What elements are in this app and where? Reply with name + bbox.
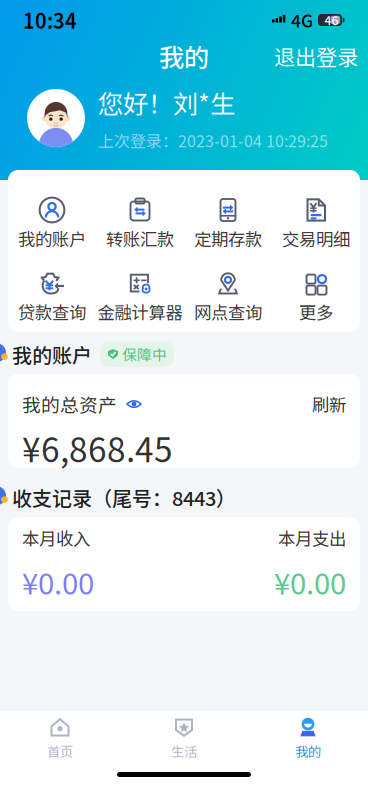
staticText: 我的 [159, 38, 209, 74]
staticText: 保障中 [122, 344, 167, 365]
staticText: 4G [291, 7, 313, 33]
staticText: ¥0.00 [274, 560, 346, 603]
staticText: 退出登录 [274, 41, 358, 71]
staticText: 金融计算器 [97, 299, 182, 324]
button[interactable]: 刷新 [312, 391, 346, 417]
staticText: 更多 [299, 299, 333, 324]
staticText: 46 [324, 11, 338, 29]
button[interactable]: 更多 [272, 269, 360, 324]
staticText: 生活 [171, 741, 197, 761]
button[interactable]: 生活 [122, 716, 246, 761]
staticText: ¥6,868.45 [22, 424, 173, 472]
staticText: 转账汇款 [106, 226, 174, 251]
button[interactable]: 定期存款 [184, 196, 272, 251]
button[interactable]: 金融计算器 [96, 269, 184, 324]
staticText: 刷新 [312, 391, 346, 417]
staticText: 10:34 [23, 5, 77, 34]
staticText: 定期存款 [194, 226, 262, 251]
staticText: 收支记录（尾号：8443） [12, 483, 236, 512]
button[interactable]: 我的账户 [8, 196, 96, 251]
staticText: 贷款查询 [18, 299, 86, 324]
button[interactable]: 我的 [246, 716, 368, 761]
staticText: 本月收入 [22, 525, 90, 550]
button[interactable]: 退出登录 [262, 35, 368, 77]
button[interactable]: 网点查询 [184, 269, 272, 324]
staticText: 我的账户 [12, 340, 92, 369]
staticText: 您好！刘*生 [98, 84, 235, 121]
staticText: 我的 [295, 741, 321, 761]
staticText: 上次登录：2023-01-04 10:29:25 [98, 129, 328, 152]
button[interactable]: 贷款查询 [8, 269, 96, 324]
button[interactable]: 首页 [0, 716, 122, 761]
staticText: 我的账户 [18, 226, 86, 251]
staticText: 首页 [47, 741, 73, 761]
button[interactable]: 转账汇款 [96, 196, 184, 251]
staticText: 本月支出 [278, 525, 346, 550]
staticText: 我的总资产 [22, 390, 117, 417]
button[interactable]: 隐藏金额 [117, 397, 142, 411]
staticText: 网点查询 [194, 299, 262, 324]
staticText: ¥0.00 [22, 560, 94, 603]
button[interactable]: 交易明细 [272, 196, 360, 251]
staticText: 交易明细 [282, 226, 350, 251]
